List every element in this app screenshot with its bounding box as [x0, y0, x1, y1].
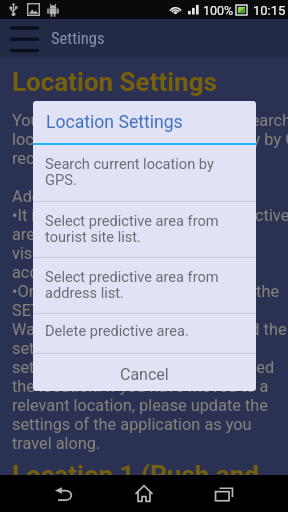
button[interactable]: Select predictive area from address list…: [33, 258, 256, 313]
staticText: 10:15: [253, 3, 286, 18]
staticText: Search current location by GPS.: [45, 156, 214, 188]
staticText: Location Settings: [12, 67, 217, 97]
staticText: Select predictive area from address list…: [45, 269, 219, 301]
staticText: Settings: [51, 29, 105, 48]
button[interactable]: Select predictive area from tourist site…: [33, 202, 256, 257]
button[interactable]: Home: [104, 475, 184, 512]
staticText: Cancel: [120, 365, 169, 384]
button[interactable]: Search current location by GPS.: [33, 145, 256, 201]
staticText: Location 1 (Push and: [12, 460, 259, 490]
button[interactable]: Cancel: [33, 354, 256, 391]
staticText: Select predictive area from tourist site…: [45, 213, 219, 245]
button[interactable]: Recent apps: [184, 475, 264, 512]
button[interactable]: Back: [24, 475, 104, 512]
staticText: You can set a predictive area to search …: [12, 111, 288, 453]
staticText: 100%: [203, 3, 234, 18]
staticText: Location Settings: [46, 112, 183, 133]
button[interactable]: Delete predictive area.: [33, 314, 256, 353]
staticText: Delete predictive area.: [45, 323, 189, 339]
button[interactable]: Open navigation menu: [4, 19, 44, 58]
